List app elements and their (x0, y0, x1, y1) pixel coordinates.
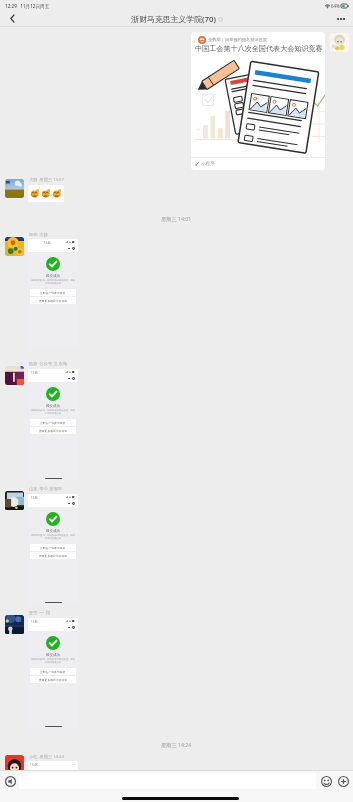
button[interactable]: 立即去广场参与抽奖 (30, 668, 76, 675)
staticText: 感谢您的参与，您的答卷已提交成功，请耐心等待结果公布 (31, 658, 75, 664)
button[interactable]: 立即去广场参与抽奖 (30, 544, 76, 551)
button[interactable]: 查看更多最新活动信息 (30, 297, 76, 304)
button[interactable]: 查看更多最新活动信息 (30, 676, 76, 683)
button[interactable]: Back (0, 11, 24, 26)
button[interactable]: Screenshot (28, 239, 78, 349)
staticText: 感谢您的参与，您的答卷已提交成功，请耐心等待结果公布 (31, 534, 75, 540)
button[interactable]: Avatar (330, 33, 349, 52)
button[interactable]: Avatar (5, 615, 24, 634)
staticText: 立即去广场参与抽奖 (40, 421, 66, 425)
staticText: 大丽 星期三 13:57 (29, 177, 64, 183)
button[interactable]: 13:46 (28, 761, 78, 775)
staticText: 小程序 (201, 161, 215, 167)
button[interactable]: 立即去广场参与抽奖 (30, 289, 76, 296)
staticText: 13:46 (44, 241, 51, 245)
button[interactable]: 查看更多最新活动信息 (30, 427, 76, 434)
button[interactable]: 立即去广场参与抽奖 (30, 419, 76, 426)
button[interactable]: Avatar (5, 755, 24, 774)
button[interactable]: Avatar (5, 237, 24, 256)
staticText: 星期三 14:24 (161, 741, 192, 748)
staticText: 13:46 (31, 496, 38, 500)
staticText: 提交成功 (46, 404, 60, 408)
staticText: 13:46 (30, 763, 38, 767)
button[interactable]: Voice input (3, 774, 17, 788)
button[interactable]: Avatar (5, 491, 24, 510)
staticText: 阳光 文静 (29, 232, 48, 238)
button[interactable]: Screenshot (28, 369, 78, 481)
staticText: 13:46 (31, 371, 38, 375)
staticText: 小红 星期三 14:24 (29, 754, 64, 760)
staticText: 12:29 11月12日周五 (5, 3, 50, 9)
staticText: 立即去广场参与抽奖 (40, 670, 66, 674)
button[interactable]: More functions (336, 774, 350, 788)
button[interactable]: Avatar (5, 179, 24, 198)
staticText: 立即去广场参与抽奖 (40, 546, 66, 550)
staticText: 星空 一 翔 (29, 610, 51, 616)
staticText: 64% (331, 3, 340, 9)
staticText: 中国工会第十八次全国代表大会知识竞赛 (195, 44, 323, 53)
staticText: 山水 李心 东海阳 (29, 486, 62, 492)
staticText: 提交成功 (46, 529, 60, 533)
staticText: 查看更多最新活动信息 (39, 554, 67, 558)
button[interactable]: More options (329, 11, 353, 26)
button[interactable]: Avatar (5, 366, 24, 385)
staticText: 查看更多最新活动信息 (39, 429, 67, 433)
staticText: 查看更多最新活动信息 (39, 678, 67, 682)
staticText: 全数据 | 问卷预约报名登记投票 (208, 37, 267, 43)
button[interactable]: Screenshot (28, 494, 78, 605)
button[interactable]: 全数据 | 问卷预约报名登记投票 (191, 32, 325, 170)
staticText: 提交成功 (46, 274, 60, 278)
button[interactable]: 查看更多最新活动信息 (30, 552, 76, 559)
staticText: 感谢您的参与，您的答卷已提交成功，请耐心等待结果公布 (31, 279, 75, 285)
staticText: 陈静 公众号 卫 东海. (29, 361, 68, 367)
staticText: 13:46 (31, 620, 38, 624)
staticText: 感谢您的参与，您的答卷已提交成功，请耐心等待结果公布 (31, 409, 75, 415)
button[interactable]: Emoji (319, 774, 333, 788)
staticText: 立即去广场参与抽奖 (40, 291, 66, 295)
staticText: 查看更多最新活动信息 (39, 299, 67, 303)
staticText: 星期三 14:01 (161, 215, 192, 222)
button[interactable]: Screenshot (28, 618, 78, 729)
staticText: ⎯⎯ (72, 763, 76, 766)
staticText: 提交成功 (46, 653, 60, 657)
button[interactable] (30, 188, 62, 199)
staticText: 浙财马克思主义学院(70) (131, 14, 216, 25)
